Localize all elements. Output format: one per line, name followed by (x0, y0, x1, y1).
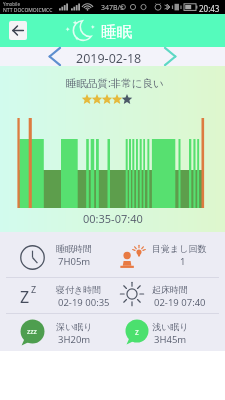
staticText: 寝付き時間 (56, 284, 102, 295)
staticText: 起床時間 (152, 284, 188, 295)
staticText: 睡眠時間 (56, 243, 92, 254)
staticText: 1 (180, 255, 186, 268)
staticText: NTT DOCOMOICMCC (3, 7, 53, 14)
staticText: 02-19 07:40 (154, 296, 206, 309)
staticText: 2019-02-18 (76, 50, 142, 67)
staticText: 浅い眠り (152, 321, 189, 332)
staticText: 深い眠り (56, 321, 93, 332)
staticText: z (135, 326, 139, 337)
button[interactable]: Next day (161, 47, 179, 66)
staticText: 目覚まし回数 (152, 243, 207, 254)
staticText: 3H20m (58, 333, 91, 346)
staticText: Z (20, 286, 30, 306)
staticText: 02-19 00:35 (58, 296, 110, 309)
staticText: 睡眠 (101, 22, 132, 42)
staticText: 3H45m (154, 333, 187, 346)
staticText: Z (31, 283, 37, 295)
staticText: 7H05m (58, 255, 91, 268)
staticText: 00:35-07:40 (83, 211, 143, 226)
staticText: 20:43 (199, 3, 220, 14)
staticText: Ymobile (3, 1, 20, 7)
button[interactable]: Back (9, 21, 27, 40)
staticText: 347B/s (101, 3, 124, 13)
staticText: zzz (27, 327, 37, 337)
staticText: 睡眠品質:非常に良い (66, 76, 164, 90)
button[interactable]: Previous day (46, 47, 64, 66)
